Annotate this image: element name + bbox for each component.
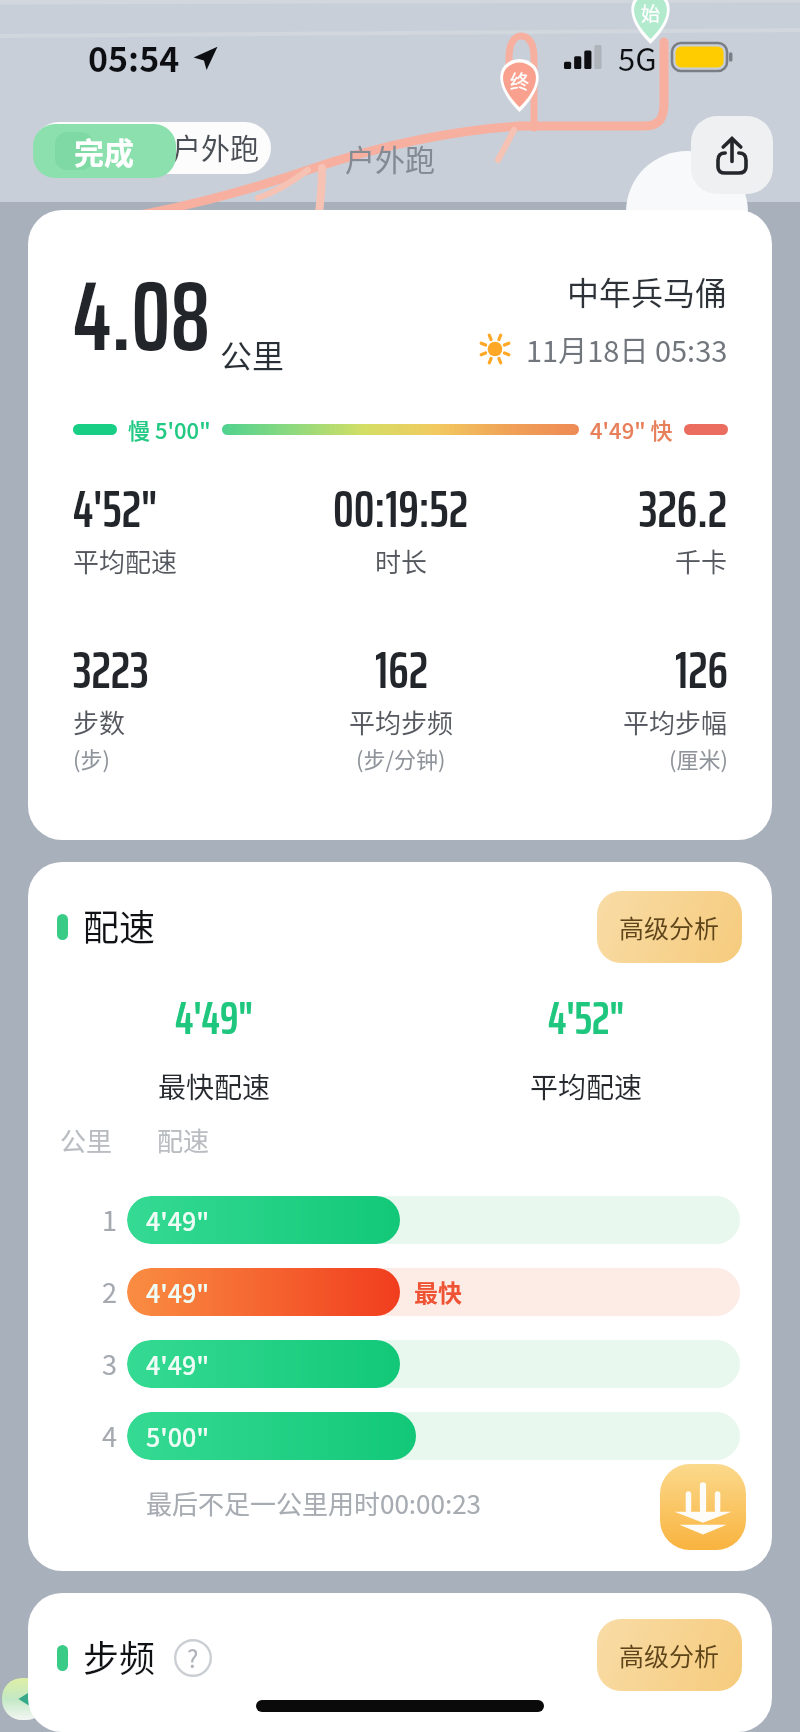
staticText: 11月18日 05:33 (526, 328, 728, 370)
staticText: 3223 (73, 629, 149, 711)
button[interactable]: 4'49" (127, 1196, 740, 1244)
staticText: ? (187, 1640, 199, 1675)
staticText: 最后不足一公里用时00:00:23 (146, 1484, 482, 1522)
staticText: 最快 (414, 1274, 462, 1309)
button[interactable]: 高级分析 (597, 1619, 742, 1691)
button[interactable]: 5'00" (127, 1412, 740, 1460)
staticText: 5G (618, 35, 657, 80)
staticText: 1 (102, 1200, 117, 1239)
staticText: 时长 (375, 542, 428, 580)
staticText: 4 (102, 1416, 117, 1455)
staticText: 公里 (60, 1121, 113, 1159)
staticText: 平均配速 (530, 1066, 643, 1107)
staticText: 平均配速 (73, 542, 178, 580)
button[interactable]: Help (174, 1639, 212, 1677)
staticText: 始 (641, 0, 661, 27)
staticText: 3 (102, 1344, 117, 1383)
staticText: 高级分析 (619, 1637, 720, 1673)
staticText: 户外跑 (172, 126, 260, 168)
staticText: 终 (510, 67, 530, 95)
staticText: (步/分钟) (356, 742, 446, 774)
button[interactable]: Layers (660, 1464, 746, 1550)
staticText: 4'52" (548, 981, 625, 1055)
staticText: 中年兵马俑 (567, 268, 728, 314)
staticText: 平均步幅 (623, 703, 728, 741)
staticText: 最快配速 (158, 1066, 271, 1107)
staticText: 05:54 (88, 33, 180, 82)
staticText: 步数 (73, 703, 126, 741)
staticText: 00:19:52 (333, 468, 469, 550)
staticText: 126 (675, 629, 728, 711)
button[interactable]: 咚 (33, 122, 271, 174)
staticText: 户外跑 (345, 136, 435, 179)
staticText: 5'00" (146, 1418, 210, 1454)
staticText: 4'49" (146, 1274, 210, 1310)
staticText: 4'49" (146, 1346, 210, 1382)
button[interactable]: Back (2, 1678, 46, 1720)
staticText: 步频 (83, 1630, 156, 1682)
button[interactable]: 高级分析 (597, 891, 742, 963)
staticText: (厘米) (669, 742, 728, 774)
staticText: 4'49" (175, 981, 254, 1055)
staticText: 4.08 (73, 239, 210, 393)
staticText: 平均步频 (349, 703, 454, 741)
button[interactable]: Share (691, 116, 773, 194)
staticText: 公里 (220, 331, 285, 377)
staticText: 配速 (83, 899, 156, 951)
button[interactable]: 4'49" (127, 1268, 740, 1316)
staticText: 高级分析 (619, 909, 720, 945)
staticText: 162 (375, 629, 428, 711)
staticText: 326.2 (639, 468, 728, 550)
staticText: 完成 (74, 129, 134, 172)
button[interactable]: 完成 (33, 124, 176, 178)
staticText: 2 (102, 1272, 117, 1311)
staticText: 4'49" (146, 1202, 210, 1238)
button[interactable]: 4'49" (127, 1340, 740, 1388)
staticText: 千卡 (675, 542, 728, 580)
staticText: 配速 (157, 1121, 210, 1159)
staticText: 4'52" (73, 468, 158, 550)
staticText: 4'49" 快 (590, 413, 673, 445)
staticText: 慢 5'00" (128, 413, 211, 445)
staticText: (步) (73, 742, 110, 774)
